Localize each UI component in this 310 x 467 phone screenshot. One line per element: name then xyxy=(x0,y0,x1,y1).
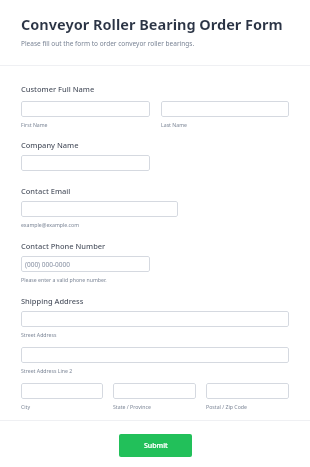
staticText: Company Name xyxy=(21,140,79,150)
button[interactable] xyxy=(206,383,289,399)
staticText: Submit xyxy=(144,441,168,451)
button[interactable] xyxy=(161,101,289,117)
button[interactable] xyxy=(21,101,150,117)
staticText: First Name xyxy=(21,121,48,128)
staticText: City xyxy=(21,403,31,410)
button[interactable] xyxy=(21,155,150,171)
button[interactable] xyxy=(21,347,289,363)
staticText: Postal / Zip Code xyxy=(206,403,247,410)
staticText: Shipping Address xyxy=(21,296,84,306)
staticText: Last Name xyxy=(161,121,187,128)
staticText: Please fill out the form to order convey… xyxy=(21,39,195,48)
staticText: State / Province xyxy=(113,403,151,410)
staticText: Customer Full Name xyxy=(21,84,95,94)
staticText: Conveyor Roller Bearing Order Form xyxy=(21,14,283,34)
button[interactable] xyxy=(21,383,103,399)
staticText: Contact Email xyxy=(21,186,71,196)
button[interactable] xyxy=(21,201,178,217)
button[interactable]: Submit xyxy=(119,434,192,457)
staticText: Please enter a valid phone number. xyxy=(21,276,107,283)
staticText: Street Address xyxy=(21,331,57,338)
staticText: (000) 000-0000 xyxy=(25,260,70,269)
staticText: example@example.com xyxy=(21,221,80,228)
button[interactable] xyxy=(113,383,196,399)
button[interactable]: (000) 000-0000 xyxy=(21,256,150,272)
button[interactable] xyxy=(21,311,289,327)
staticText: Street Address Line 2 xyxy=(21,367,73,374)
staticText: Contact Phone Number xyxy=(21,241,106,251)
